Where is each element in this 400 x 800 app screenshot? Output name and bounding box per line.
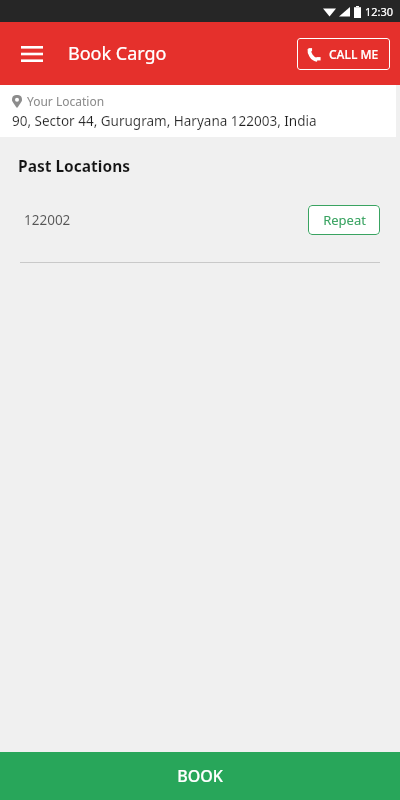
staticText: Repeat bbox=[323, 211, 366, 229]
button[interactable]: 122002 bbox=[0, 200, 400, 240]
staticText: BOOK bbox=[177, 765, 223, 787]
staticText: Your Location bbox=[27, 93, 105, 109]
staticText: CALL ME bbox=[329, 46, 379, 62]
staticText: 90, Sector 44, Gurugram, Haryana 122003,… bbox=[12, 112, 317, 130]
staticText: Book Cargo bbox=[68, 41, 167, 66]
staticText: Past Locations bbox=[18, 155, 130, 176]
button[interactable]: BOOK bbox=[0, 752, 400, 800]
button[interactable]: Open navigation menu bbox=[10, 32, 54, 76]
staticText: 122002 bbox=[24, 211, 71, 229]
button[interactable]: Your Location bbox=[0, 85, 396, 137]
button[interactable]: CALL ME bbox=[297, 38, 390, 70]
staticText: 12:30 bbox=[365, 4, 394, 19]
button[interactable]: Repeat bbox=[308, 205, 380, 235]
